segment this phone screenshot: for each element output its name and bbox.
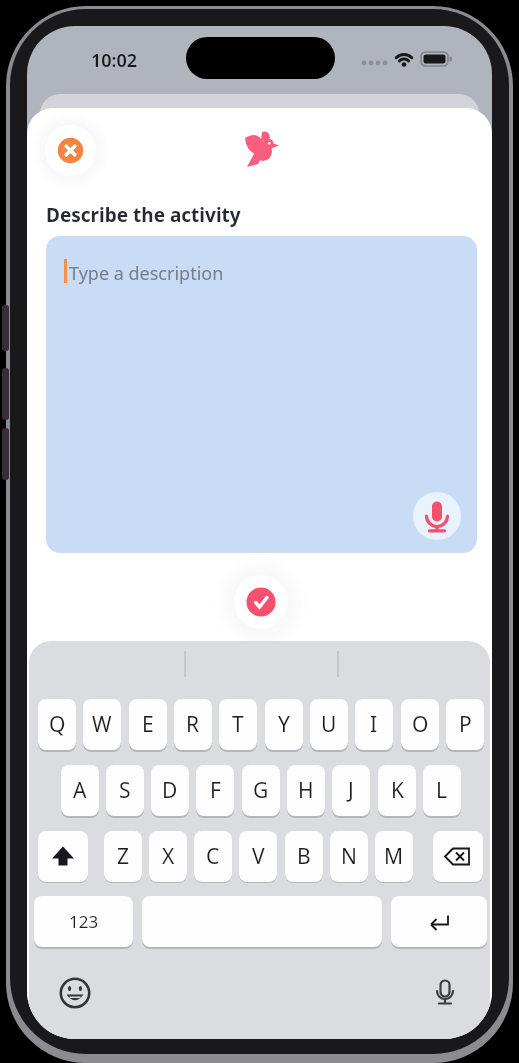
staticText: Q (49, 710, 66, 739)
button[interactable]: G (242, 765, 280, 816)
staticText: Type a description (69, 261, 224, 286)
button[interactable]: V (239, 831, 277, 882)
button[interactable]: O (401, 699, 439, 750)
button[interactable] (413, 492, 461, 540)
staticText: F (210, 776, 221, 805)
button[interactable]: R (174, 699, 212, 750)
button[interactable]: C (194, 831, 232, 882)
button[interactable] (45, 125, 96, 176)
staticText: U (321, 710, 337, 739)
button[interactable] (142, 896, 382, 947)
button[interactable]: A (61, 765, 99, 816)
button[interactable]: F (196, 765, 234, 816)
staticText: 10:02 (91, 48, 138, 73)
staticText: B (297, 842, 311, 871)
staticText: Describe the activity (46, 202, 241, 228)
staticText: H (298, 776, 314, 805)
staticText: Z (117, 842, 130, 871)
staticText: X (162, 842, 175, 871)
button[interactable]: T (219, 699, 257, 750)
button[interactable]: D (151, 765, 189, 816)
staticText: C (206, 842, 220, 871)
button[interactable]: E (129, 699, 167, 750)
button[interactable] (429, 977, 461, 1009)
button[interactable]: Z (104, 831, 142, 882)
button[interactable]: K (378, 765, 416, 816)
button[interactable]: 123 (34, 896, 133, 947)
staticText: A (73, 776, 87, 805)
button[interactable]: W (83, 699, 121, 750)
button[interactable]: Y (265, 699, 303, 750)
staticText: J (348, 776, 354, 805)
staticText: M (384, 842, 404, 871)
button[interactable] (38, 831, 88, 882)
staticText: Y (278, 710, 290, 739)
button[interactable]: Q (38, 699, 76, 750)
staticText: I (370, 710, 378, 739)
staticText: P (459, 710, 472, 739)
button[interactable]: Type a description (46, 236, 477, 553)
staticText: R (186, 710, 200, 739)
button[interactable]: H (287, 765, 325, 816)
staticText: 123 (69, 910, 99, 933)
staticText: K (391, 776, 404, 805)
staticText: E (142, 710, 154, 739)
button[interactable]: I (355, 699, 393, 750)
button[interactable]: U (310, 699, 348, 750)
button[interactable] (391, 896, 487, 947)
button[interactable]: P (446, 699, 484, 750)
button[interactable]: S (106, 765, 144, 816)
staticText: G (253, 776, 269, 805)
button[interactable]: B (285, 831, 323, 882)
button[interactable]: J (332, 765, 370, 816)
button[interactable] (234, 575, 288, 629)
button[interactable]: N (330, 831, 368, 882)
staticText: S (119, 776, 131, 805)
button[interactable] (433, 831, 483, 882)
staticText: O (412, 710, 429, 739)
staticText: V (252, 842, 265, 871)
staticText: D (162, 776, 178, 805)
staticText: N (341, 842, 357, 871)
staticText: W (92, 710, 112, 739)
staticText: T (232, 710, 244, 739)
button[interactable] (59, 977, 91, 1009)
button[interactable]: L (423, 765, 461, 816)
button[interactable]: M (375, 831, 413, 882)
button[interactable]: X (149, 831, 187, 882)
staticText: L (436, 776, 448, 805)
